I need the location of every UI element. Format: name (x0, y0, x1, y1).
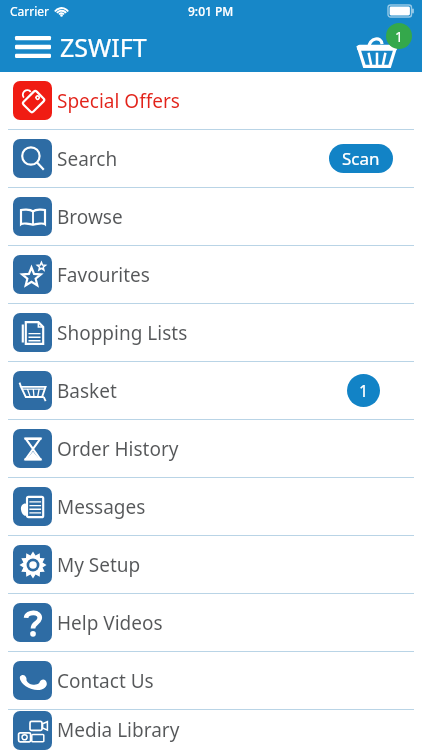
staticText: Shopping Lists (57, 320, 188, 346)
staticText: 9:01 PM (188, 3, 234, 19)
staticText: Scan (342, 147, 380, 170)
staticText: Basket (57, 378, 117, 404)
button[interactable]: Shopping Lists (0, 304, 422, 361)
staticText: 1 (359, 380, 369, 402)
staticText: Favourites (57, 262, 150, 288)
staticText: Browse (57, 204, 123, 230)
button[interactable]: Favourites (0, 246, 422, 303)
button[interactable]: Scan (329, 144, 393, 173)
staticText: Help Videos (57, 610, 163, 636)
button[interactable]: Menu (10, 27, 56, 67)
button[interactable]: Browse (0, 188, 422, 245)
button[interactable]: Messages (0, 478, 422, 535)
button[interactable]: Search (0, 130, 422, 187)
staticText: Media Library (57, 717, 180, 743)
button[interactable]: Order History (0, 420, 422, 477)
staticText: 1 (395, 27, 404, 46)
button[interactable]: Media Library (0, 710, 422, 750)
staticText: Messages (57, 494, 146, 520)
button[interactable]: My Setup (0, 536, 422, 593)
button[interactable]: Basket (352, 22, 414, 72)
button[interactable]: Special Offers (0, 72, 422, 129)
staticText: Special Offers (57, 88, 180, 114)
staticText: Search (57, 146, 118, 172)
staticText: Contact Us (57, 668, 154, 694)
staticText: Carrier (10, 3, 50, 19)
button[interactable]: Contact Us (0, 652, 422, 709)
staticText: Order History (57, 436, 179, 462)
staticText: My Setup (57, 552, 141, 578)
button[interactable]: Help Videos (0, 594, 422, 651)
button[interactable]: Basket (0, 362, 422, 419)
staticText: ZSWIFT (60, 30, 147, 64)
